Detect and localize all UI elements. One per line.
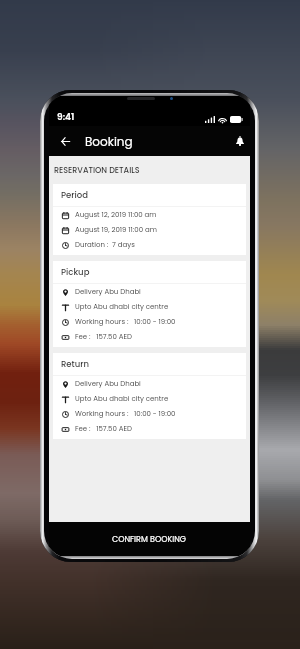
staticText: August 19, 2019 11:00 am [75, 225, 157, 235]
staticText: Fee : 157.50 AED [75, 424, 133, 434]
staticText: Delivery Abu Dhabi [75, 287, 141, 297]
button[interactable]: Pickup [53, 261, 246, 347]
staticText: Working hours : 10:00 - 19:00 [75, 317, 176, 327]
staticText: Duration : 7 days [75, 240, 135, 250]
staticText: 9:41 [57, 111, 75, 124]
staticText: Return [61, 358, 90, 370]
staticText: Delivery Abu Dhabi [75, 379, 141, 389]
staticText: August 12, 2019 11:00 am [75, 210, 157, 220]
staticText: Booking [85, 133, 133, 150]
button[interactable]: Back [61, 137, 70, 146]
staticText: Fee : 157.50 AED [75, 332, 133, 342]
staticText: Working hours : 10:00 - 19:00 [75, 409, 176, 419]
staticText: Pickup [61, 266, 90, 278]
button[interactable]: Return [53, 353, 246, 439]
staticText: Upto Abu dhabi city centre [75, 302, 169, 312]
staticText: Upto Abu dhabi city centre [75, 394, 169, 404]
button[interactable]: CONFIRM BOOKING [49, 522, 250, 556]
staticText: CONFIRM BOOKING [112, 534, 187, 545]
button[interactable]: Notifications [235, 136, 245, 146]
staticText: Period [61, 189, 88, 201]
button[interactable]: Period [53, 184, 246, 255]
staticText: RESERVATION DETAILS [54, 165, 140, 176]
